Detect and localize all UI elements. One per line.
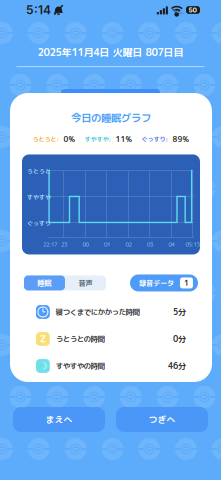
staticText: 46分 xyxy=(168,360,186,372)
staticText: すやすや: xyxy=(84,135,111,144)
staticText: 1 xyxy=(184,278,189,288)
staticText: 04 xyxy=(168,240,174,248)
staticText: 05:13 xyxy=(186,240,200,248)
staticText: すやすや xyxy=(27,193,51,201)
staticText: 録音データ xyxy=(139,278,174,288)
staticText: 0% xyxy=(63,134,75,144)
staticText: 睡眠 xyxy=(37,278,51,288)
staticText: ぐっすり: xyxy=(141,135,168,144)
staticText: 5:14 xyxy=(26,3,51,17)
button[interactable]: つぎへ xyxy=(116,407,208,432)
staticText: 00 xyxy=(82,240,88,248)
staticText: ぐっすり xyxy=(27,219,51,227)
staticText: うとうと xyxy=(27,167,51,175)
staticText: 寝つくまでにかかった時間 xyxy=(56,307,140,317)
staticText: 今日の睡眠グラフ xyxy=(71,110,151,125)
staticText: 23 xyxy=(61,240,67,248)
staticText: 22:17 xyxy=(43,240,57,248)
staticText: 2025年11月4日 火曜日 807日目 xyxy=(37,45,183,59)
staticText: 89% xyxy=(172,134,189,144)
staticText: 03 xyxy=(147,240,153,248)
button[interactable]: 音声 xyxy=(65,275,106,290)
button[interactable]: ☽ xyxy=(10,352,212,379)
button[interactable]: まえへ xyxy=(13,407,105,432)
staticText: 音声 xyxy=(78,278,92,288)
button[interactable]: Z xyxy=(10,325,212,352)
staticText: 01 xyxy=(104,240,110,248)
staticText: すやすやの時間 xyxy=(56,361,105,371)
staticText: ☽ xyxy=(39,360,47,371)
staticText: まえへ xyxy=(45,413,72,426)
staticText: うとうとの時間 xyxy=(56,334,105,344)
staticText: Z xyxy=(40,333,46,345)
staticText: うとうと: xyxy=(32,135,59,144)
staticText: 02 xyxy=(125,240,131,248)
staticText: 0分 xyxy=(173,333,186,345)
staticText: つぎへ xyxy=(148,413,175,426)
staticText: 11% xyxy=(115,134,132,144)
button[interactable]: 寝つくまでにかかった時間 xyxy=(10,298,212,325)
staticText: 5分 xyxy=(173,306,186,318)
button[interactable]: 録音データ xyxy=(130,274,198,291)
button[interactable]: 睡眠 xyxy=(24,275,65,290)
staticText: 50 xyxy=(189,6,197,14)
